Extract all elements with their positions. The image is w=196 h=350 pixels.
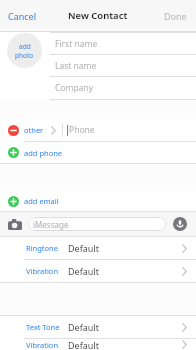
staticText: Ringtone	[26, 243, 58, 253]
staticText: New Contact	[68, 9, 128, 22]
staticText: First name	[55, 38, 98, 50]
button[interactable]: Camera	[8, 219, 22, 230]
staticText: Cancel	[8, 10, 37, 22]
button[interactable]: Last name	[0, 55, 196, 76]
button[interactable]: Done	[164, 0, 187, 31]
staticText: Phone	[69, 124, 95, 136]
staticText: Vibration	[26, 266, 59, 276]
staticText: photo	[15, 51, 34, 60]
staticText: Default	[68, 242, 99, 254]
staticText: Last name	[55, 60, 97, 72]
button[interactable]: other	[0, 119, 196, 141]
button[interactable]: Vibration	[0, 339, 196, 350]
staticText: add phone	[24, 148, 63, 158]
staticText: Default	[68, 265, 99, 277]
staticText: other	[24, 125, 44, 135]
button[interactable]: add email	[0, 191, 196, 211]
staticText: Text Tone	[26, 322, 60, 332]
staticText: Done	[164, 10, 187, 22]
staticText: Default	[68, 321, 99, 333]
button[interactable]: First name	[0, 33, 196, 54]
button[interactable]: add phone	[0, 142, 196, 163]
staticText: add email	[24, 196, 59, 206]
staticText: add	[19, 42, 31, 51]
staticText: Vibration	[26, 340, 59, 350]
button[interactable]: Record audio	[173, 217, 187, 231]
button[interactable]: Vibration	[0, 260, 196, 282]
button[interactable]: Company	[0, 77, 196, 98]
button[interactable]: Ringtone	[0, 237, 196, 259]
staticText: Default	[68, 339, 99, 350]
button[interactable]: Text Tone	[0, 316, 196, 338]
button[interactable]: Cancel	[8, 0, 37, 31]
button[interactable]: iMessage	[28, 217, 166, 231]
staticText: iMessage	[33, 219, 69, 230]
button[interactable]: Add photo	[7, 33, 42, 68]
staticText: Company	[55, 82, 94, 94]
